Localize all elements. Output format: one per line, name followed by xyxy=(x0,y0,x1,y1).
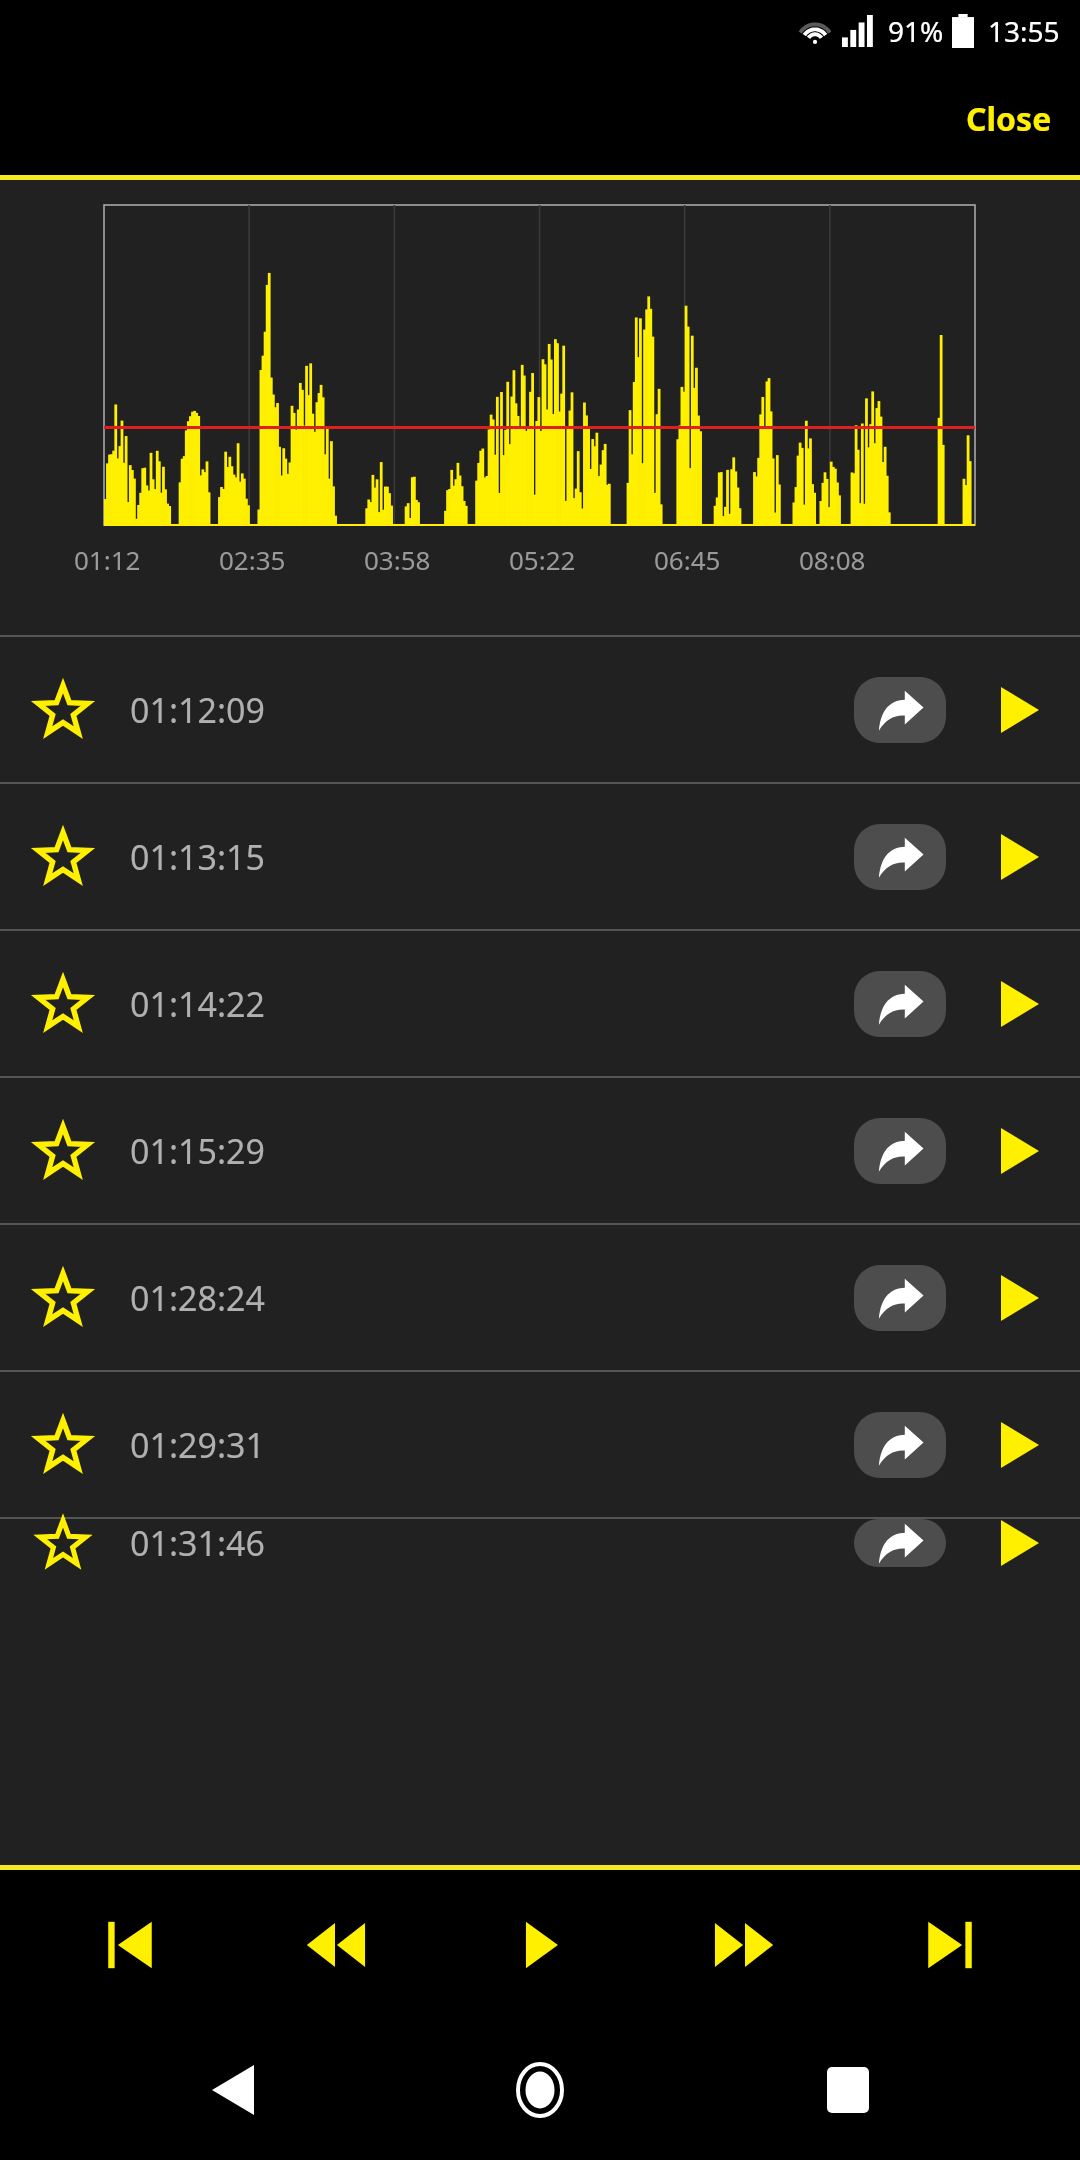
button[interactable]: Share xyxy=(854,1519,946,1567)
button[interactable]: Back xyxy=(158,2020,308,2160)
button[interactable]: Bookmark xyxy=(28,1519,98,1567)
button[interactable]: Share xyxy=(854,971,946,1037)
button[interactable]: Previous xyxy=(55,1880,205,2010)
staticText: 06:45 xyxy=(654,542,721,577)
button[interactable]: Play xyxy=(984,968,1056,1040)
button[interactable]: Bookmark xyxy=(28,822,98,892)
button[interactable]: Play xyxy=(984,1409,1056,1481)
button[interactable]: Fast forward xyxy=(670,1880,820,2010)
button[interactable]: Share xyxy=(854,1412,946,1478)
button[interactable]: Bookmark xyxy=(28,1410,98,1480)
button[interactable]: Play xyxy=(984,1262,1056,1334)
button[interactable]: Bookmark xyxy=(0,637,1080,782)
staticText: 01:31:46 xyxy=(130,1520,265,1566)
staticText: 01:15:29 xyxy=(130,1128,265,1174)
button[interactable]: Bookmark xyxy=(28,675,98,745)
button[interactable]: Play xyxy=(984,674,1056,746)
button[interactable]: Share xyxy=(854,1118,946,1184)
button[interactable]: Play xyxy=(984,821,1056,893)
button[interactable]: Bookmark xyxy=(0,1225,1080,1370)
staticText: 02:35 xyxy=(219,542,286,577)
staticText: 03:58 xyxy=(364,542,431,577)
button[interactable]: Play xyxy=(465,1880,615,2010)
button[interactable]: Recent apps xyxy=(773,2020,923,2160)
staticText: 01:29:31 xyxy=(130,1422,265,1468)
button[interactable]: Play xyxy=(984,1115,1056,1187)
button[interactable]: Bookmark xyxy=(28,969,98,1039)
button[interactable]: Bookmark xyxy=(0,784,1080,929)
staticText: 01:13:15 xyxy=(130,834,265,880)
button[interactable]: Next xyxy=(875,1880,1025,2010)
button[interactable]: Bookmark xyxy=(28,1116,98,1186)
button[interactable]: Home xyxy=(465,2020,615,2160)
staticText: 01:14:22 xyxy=(130,981,265,1027)
button[interactable]: Bookmark xyxy=(0,1078,1080,1223)
staticText: Close xyxy=(966,97,1052,141)
button[interactable]: Share xyxy=(854,1265,946,1331)
button[interactable]: Play xyxy=(984,1519,1056,1567)
button[interactable]: Share xyxy=(854,677,946,743)
button[interactable]: Rewind xyxy=(260,1880,410,2010)
button[interactable]: Close xyxy=(938,83,1080,155)
staticText: 91% xyxy=(888,12,944,50)
button[interactable]: Bookmark xyxy=(28,1263,98,1333)
staticText: 08:08 xyxy=(799,542,866,577)
staticText: 01:28:24 xyxy=(130,1275,265,1321)
button[interactable]: Bookmark xyxy=(0,1372,1080,1517)
button[interactable]: Share xyxy=(854,824,946,890)
button[interactable]: Bookmark xyxy=(0,931,1080,1076)
staticText: 13:55 xyxy=(988,12,1060,50)
staticText: 01:12:09 xyxy=(130,687,265,733)
staticText: 05:22 xyxy=(509,542,576,577)
staticText: 01:12 xyxy=(74,542,141,577)
